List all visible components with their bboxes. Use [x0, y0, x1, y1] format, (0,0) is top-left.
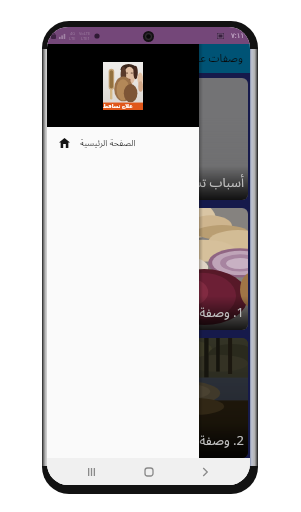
staticText: 2. وصفة: [196, 427, 244, 454]
staticText: أسباب تساقط الشعر: [138, 169, 244, 196]
staticText: الصفحة الرئيسية: [80, 134, 136, 152]
button[interactable]: Home: [137, 460, 161, 484]
staticText: 1. وصفة: [196, 299, 244, 326]
staticText: VoLTE: [79, 31, 91, 36]
button[interactable]: أسباب تساقط الشعر: [49, 78, 248, 200]
staticText: وصفات علاج تساقط الشعر: [126, 47, 243, 70]
staticText: ٧:١١: [231, 31, 245, 41]
staticText: LTE1: [81, 36, 90, 41]
button[interactable]: Recent apps: [80, 460, 104, 484]
staticText: 4G: [70, 31, 76, 36]
button[interactable]: 2. وصفة: [49, 338, 248, 458]
button[interactable]: Back: [193, 460, 217, 484]
staticText: LTE: [69, 36, 76, 41]
button[interactable]: 1. وصفة: [49, 208, 248, 330]
staticText: علاج تساقط الشعر: [103, 103, 143, 110]
button[interactable]: الصفحة الرئيسية: [47, 127, 199, 158]
